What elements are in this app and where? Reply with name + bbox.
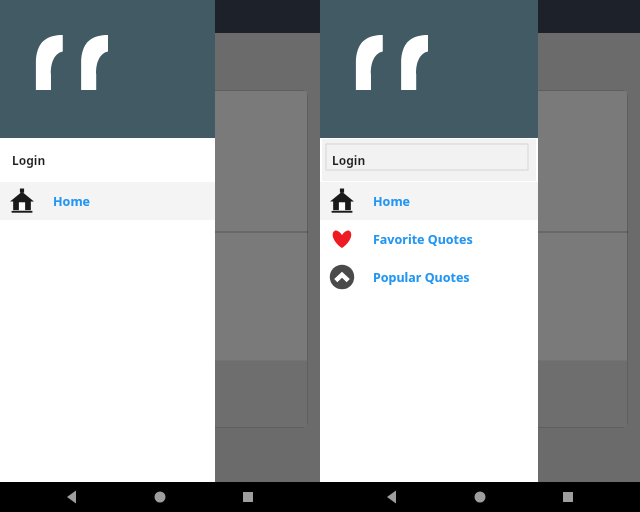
button[interactable]: Home xyxy=(320,182,538,220)
staticText: Home xyxy=(53,193,91,210)
other: Home xyxy=(9,188,35,214)
staticText: PAT WHAT YOU EAT xyxy=(18,194,160,235)
staticText: Login xyxy=(332,152,366,168)
staticText: Favorite Quotes xyxy=(373,231,473,248)
button[interactable]: Home xyxy=(0,182,215,220)
button[interactable]: Popular Quotes xyxy=(320,258,538,296)
staticText: Home xyxy=(373,193,411,210)
staticText: PAT WHAT YOU EAT xyxy=(338,194,480,235)
button[interactable]: Login xyxy=(0,138,215,182)
other: Popular Quotes xyxy=(329,264,355,290)
other: Home xyxy=(329,188,355,214)
button[interactable]: Login xyxy=(320,138,538,182)
staticText: Popular Quotes xyxy=(373,269,470,286)
staticText: Login xyxy=(12,152,46,168)
button[interactable]: Favorite Quotes xyxy=(320,220,538,258)
other: Favorite Quotes xyxy=(329,226,355,252)
